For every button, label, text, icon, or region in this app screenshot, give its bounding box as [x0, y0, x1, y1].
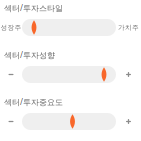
staticText: 가치주 [118, 23, 139, 32]
staticText: 성장주 [0, 23, 21, 32]
staticText: 섹터/투자중요도 [4, 97, 63, 107]
button[interactable] [0, 66, 141, 83]
button[interactable] [0, 113, 141, 130]
staticText: 섹터/투자성향 [4, 50, 55, 60]
staticText: 섹터/투자스타일 [4, 3, 63, 13]
button[interactable]: 성장주 [0, 19, 141, 36]
